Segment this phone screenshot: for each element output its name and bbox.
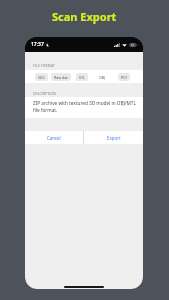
staticText: Raw data [54, 75, 68, 80]
button[interactable]: Raw data [51, 73, 71, 81]
staticText: OBJ [99, 75, 106, 80]
staticText: STL [79, 75, 85, 80]
button[interactable]: SEG [35, 73, 48, 81]
staticText: Cancel [47, 135, 61, 141]
staticText: FILE FORMAT [33, 63, 55, 67]
button[interactable]: OBJ [96, 73, 109, 81]
button[interactable]: PLY [118, 73, 130, 81]
staticText: DESCRIPTION [33, 91, 56, 95]
button[interactable]: Export [84, 131, 143, 144]
staticText: SEG [38, 75, 45, 80]
staticText: Scan Export [52, 9, 117, 24]
staticText: 17:37 [31, 41, 44, 48]
staticText: ZIP archive with textured 3D model in OB… [33, 100, 139, 114]
button[interactable]: Cancel [25, 131, 83, 144]
button[interactable]: STL [76, 73, 88, 81]
staticText: Export [107, 135, 121, 141]
staticText: PLY [121, 75, 127, 80]
